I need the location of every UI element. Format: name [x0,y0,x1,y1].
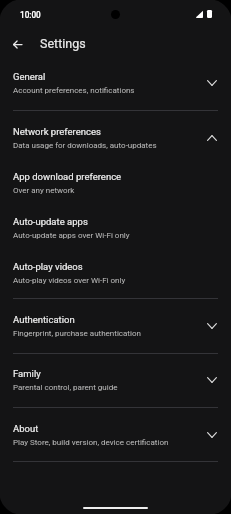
button[interactable]: App download preference [0,162,231,203]
staticText: Authentication [13,314,75,325]
button[interactable]: Back [1,28,34,61]
button[interactable]: Auto-update apps [0,207,231,248]
staticText: Auto-play videos over Wi-Fi only [13,276,126,285]
staticText: Over any network [13,186,75,195]
staticText: About [13,423,39,434]
button[interactable]: Network preferences [0,117,231,158]
staticText: Auto-update apps [13,216,88,227]
staticText: Network preferences [13,126,101,137]
staticText: Fingerprint, purchase authentication [13,329,141,338]
staticText: Auto-update apps over Wi-Fi only [13,231,130,240]
staticText: Data usage for downloads, auto-updates [13,141,157,150]
staticText: Account preferences, notifications [13,86,135,95]
button[interactable]: About [0,414,231,455]
button[interactable]: Auto-play videos [0,252,231,293]
button[interactable]: General [0,62,231,103]
staticText: Settings [40,36,86,51]
button[interactable]: Family [0,359,231,400]
staticText: General [13,71,46,82]
staticText: App download preference [13,171,122,182]
staticText: Auto-play videos [13,261,83,272]
staticText: Play Store, build version, device certif… [13,438,169,447]
staticText: 10:00 [20,10,41,20]
button[interactable]: Authentication [0,305,231,346]
staticText: Family [13,368,41,379]
staticText: Parental control, parent guide [13,383,118,392]
